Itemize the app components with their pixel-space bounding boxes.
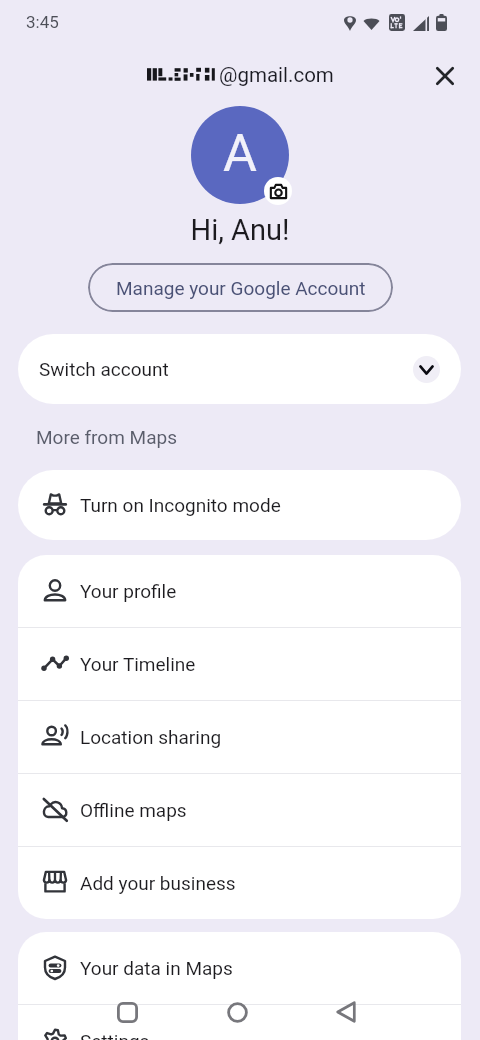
button[interactable]: Manage your Google Account: [88, 263, 393, 312]
staticText: Your data in Maps: [80, 957, 233, 979]
button[interactable]: Back: [291, 986, 401, 1040]
staticText: Manage your Google Account: [116, 277, 366, 299]
button[interactable]: Turn on Incognito mode: [18, 470, 461, 540]
staticText: A: [223, 123, 257, 184]
button[interactable]: Settings: [18, 1005, 461, 1040]
staticText: More from Maps: [36, 426, 177, 448]
staticText: Switch account: [39, 358, 169, 380]
staticText: Offline maps: [80, 799, 187, 821]
staticText: Hi, Anu!: [0, 213, 480, 247]
button[interactable]: Expand account list: [413, 356, 440, 383]
staticText: Your Timeline: [80, 653, 196, 675]
button[interactable]: Your profile: [18, 555, 461, 627]
staticText: 3:45: [26, 12, 59, 32]
staticText: Add your business: [80, 872, 236, 894]
staticText: @gmail.com: [219, 63, 334, 87]
staticText: Your profile: [80, 580, 177, 602]
button[interactable]: Home: [182, 986, 292, 1040]
button[interactable]: Your data in Maps: [18, 932, 461, 1004]
button[interactable]: Switch account: [18, 334, 461, 404]
staticText: Location sharing: [80, 726, 222, 748]
staticText: Turn on Incognito mode: [80, 494, 281, 516]
button[interactable]: Close: [424, 54, 466, 96]
button[interactable]: Add your business: [18, 847, 461, 919]
button[interactable]: Your Timeline: [18, 628, 461, 700]
button[interactable]: Location sharing: [18, 701, 461, 773]
staticText: Settings: [80, 1030, 150, 1040]
button[interactable]: Offline maps: [18, 774, 461, 846]
button[interactable]: Profile photo: [191, 106, 289, 204]
button[interactable]: Recent apps: [72, 986, 182, 1040]
button[interactable]: Change profile photo: [264, 177, 292, 205]
